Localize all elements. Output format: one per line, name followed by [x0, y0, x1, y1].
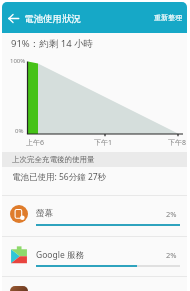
staticText: 下午1 [94, 138, 113, 148]
staticText: 電池使用狀況 [24, 13, 81, 25]
button[interactable]: Back [5, 10, 22, 27]
staticText: 上午6 [26, 138, 45, 148]
button[interactable]: Instagram [2, 276, 187, 291]
staticText: 下午8 [168, 138, 187, 148]
staticText: 91%：約剩 14 小時 [11, 37, 94, 50]
button[interactable]: 重新整理 [150, 10, 186, 25]
staticText: 100% [10, 57, 26, 65]
button[interactable]: 螢幕 [2, 195, 187, 235]
staticText: Google 服務 [36, 249, 84, 261]
staticText: 重新整理 [154, 13, 182, 22]
staticText: 電池已使用: 56分鐘 27秒 [12, 171, 107, 183]
staticText: 0% [15, 127, 24, 135]
staticText: 螢幕 [36, 208, 53, 219]
staticText: 上次完全充電後的使用量 [12, 155, 95, 164]
button[interactable]: Google 服務 [2, 236, 187, 276]
staticText: 2% [166, 250, 177, 260]
staticText: 2% [166, 209, 177, 219]
